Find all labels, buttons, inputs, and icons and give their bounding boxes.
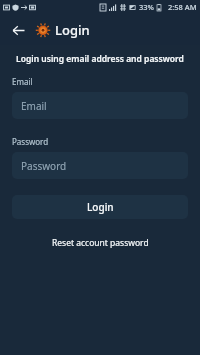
staticText: Password xyxy=(21,159,67,173)
staticText: Login xyxy=(55,21,90,39)
button[interactable]: Back xyxy=(4,16,32,44)
button[interactable]: Email xyxy=(12,92,188,119)
button[interactable]: Login xyxy=(12,195,188,219)
staticText: Reset account password xyxy=(52,237,149,249)
staticText: Email xyxy=(12,76,33,87)
staticText: Email xyxy=(21,99,47,113)
button[interactable]: Password xyxy=(12,152,188,179)
button[interactable]: Reset account password xyxy=(44,234,157,252)
staticText: Password xyxy=(12,136,49,147)
staticText: Login using email address and password xyxy=(16,53,184,65)
staticText: 2:58 AM xyxy=(168,2,197,12)
staticText: Login xyxy=(87,200,114,214)
staticText: 33% xyxy=(139,2,154,12)
